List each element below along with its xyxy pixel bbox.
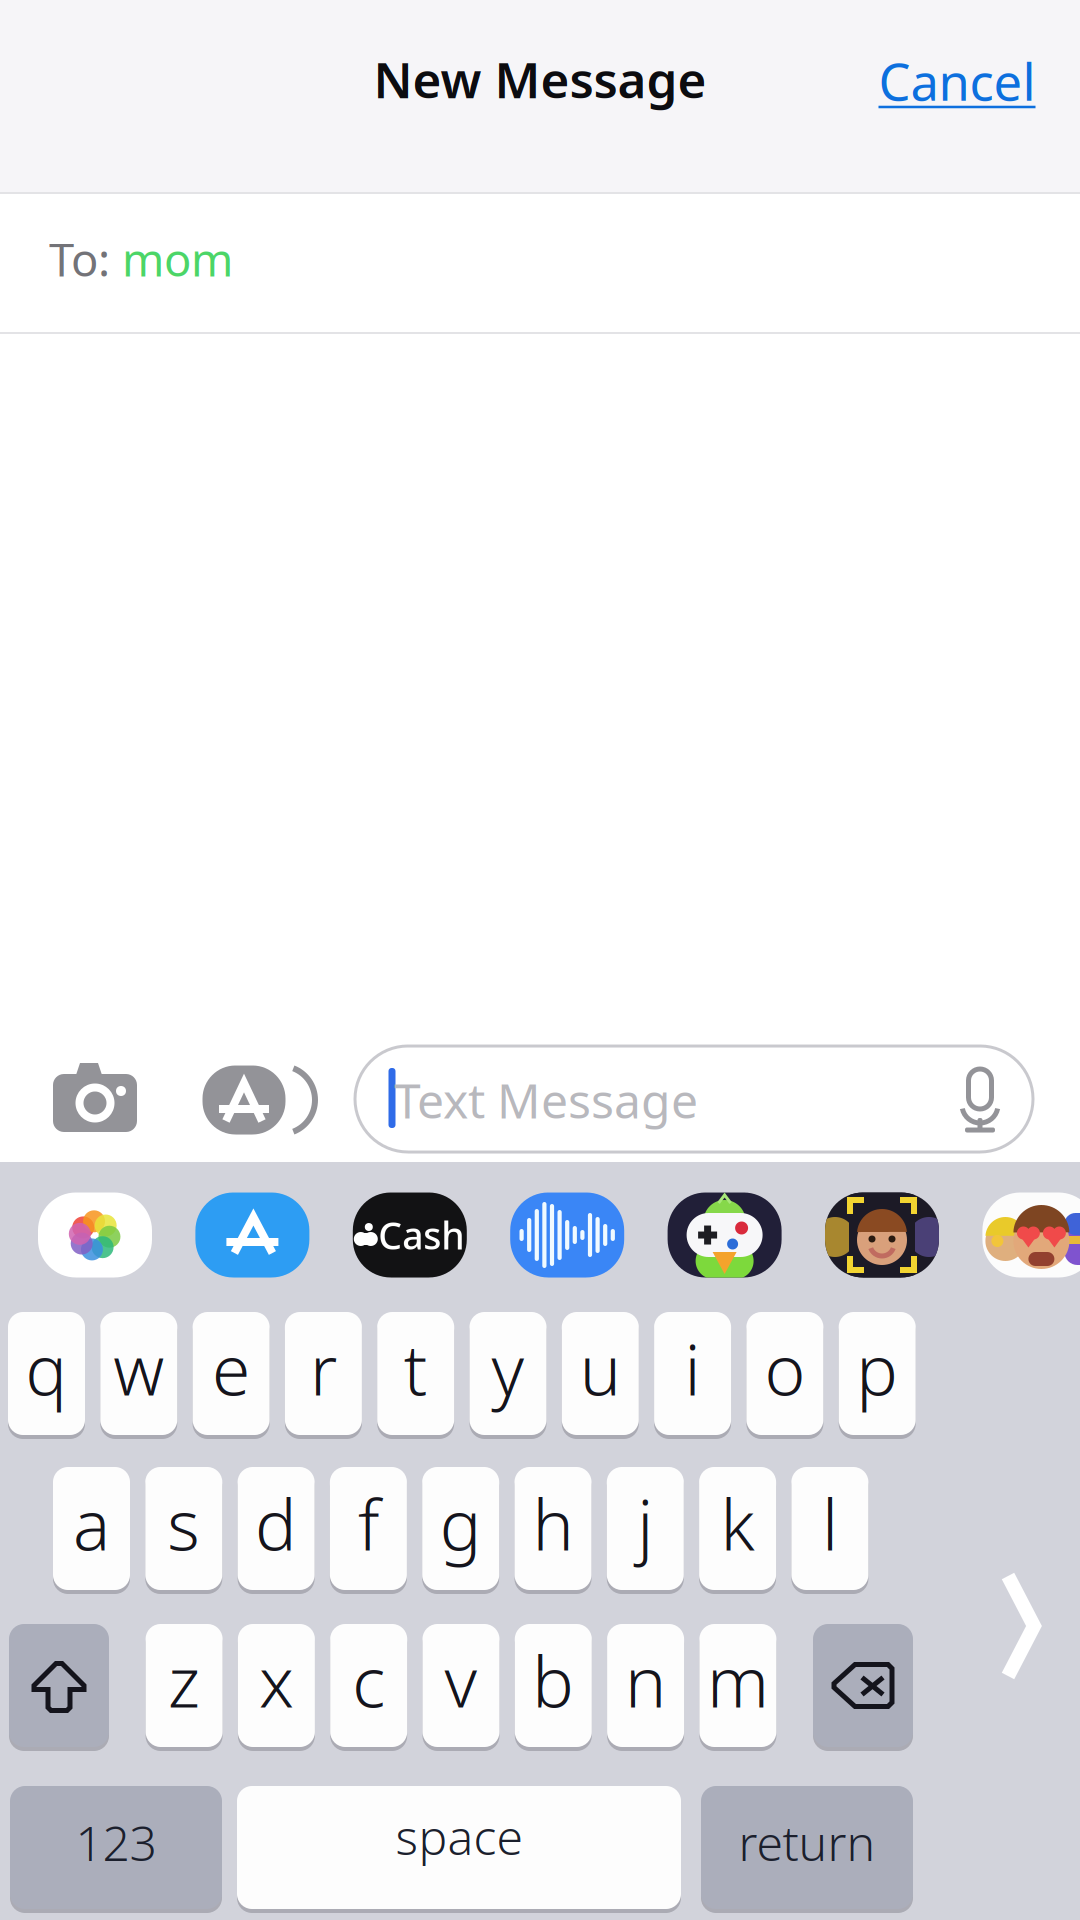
button[interactable]: g [422,1463,499,1594]
staticText: n [625,1634,666,1727]
staticText: r [310,1322,337,1415]
button[interactable]: Cancel [878,47,1035,115]
staticText: c [352,1634,385,1727]
button[interactable]: m [699,1620,776,1751]
staticText: Cash [378,1210,464,1260]
staticText: l [822,1477,838,1570]
button[interactable]: d [238,1463,315,1594]
button[interactable]: a [53,1463,130,1594]
button[interactable]: Apple Cash [353,1192,467,1277]
button[interactable]: y [469,1308,546,1439]
button[interactable]: Photos [38,1192,152,1277]
button[interactable]: q [8,1308,85,1439]
staticText: Text Message [394,1068,698,1132]
button[interactable]: Audio Message [510,1192,624,1277]
button[interactable]: To: [49,189,1080,329]
button[interactable]: j [607,1463,684,1594]
staticText: p [856,1322,898,1415]
staticText: i [685,1322,701,1415]
button[interactable]: e [193,1308,270,1439]
button[interactable]: Dictate [957,1065,1003,1135]
button[interactable]: b [515,1620,592,1751]
staticText: s [167,1477,200,1570]
staticText: w [113,1322,164,1415]
staticText: z [168,1634,200,1727]
button[interactable]: f [330,1463,407,1594]
button[interactable]: App Store [194,1058,306,1142]
button[interactable]: w [100,1308,177,1439]
button[interactable]: u [562,1308,639,1439]
staticText: u [580,1322,621,1415]
button[interactable]: Shift [9,1620,109,1751]
button[interactable]: z [146,1620,223,1751]
staticText: mom [122,229,233,289]
staticText: o [764,1322,805,1415]
staticText: New Message [373,46,706,112]
button[interactable]: Memoji camera [825,1192,939,1277]
staticText: x [259,1634,294,1727]
staticText: q [25,1322,67,1415]
button[interactable]: s [145,1463,222,1594]
button[interactable]: v [422,1620,499,1751]
staticText: 123 [75,1811,156,1874]
staticText: g [440,1477,482,1570]
button[interactable]: Camera [49,1060,141,1140]
button[interactable]: k [699,1463,776,1594]
button[interactable]: r [285,1308,362,1439]
staticText: h [532,1477,573,1570]
staticText: v [444,1634,477,1727]
staticText: t [404,1322,428,1415]
button[interactable]: h [514,1463,591,1594]
button[interactable]: t [377,1308,454,1439]
button[interactable]: o [746,1308,823,1439]
staticText: j [637,1477,653,1570]
button[interactable]: App Store [195,1192,309,1277]
staticText: d [255,1477,297,1570]
staticText: y [491,1322,524,1415]
button[interactable]: space [237,1782,681,1913]
button[interactable]: p [839,1308,916,1439]
staticText: e [212,1322,250,1415]
staticText: f [358,1477,379,1570]
staticText: a [73,1477,110,1570]
button[interactable]: i [654,1308,731,1439]
staticText: b [532,1634,574,1727]
button[interactable]: n [607,1620,684,1751]
staticText: space [395,1805,522,1868]
staticText: return [738,1811,875,1874]
button[interactable]: Game Pigeon [668,1192,782,1277]
button[interactable]: l [791,1463,868,1594]
staticText: Cancel [878,47,1035,115]
button[interactable]: 123 [10,1782,222,1913]
button[interactable]: c [330,1620,407,1751]
button[interactable]: x [238,1620,315,1751]
button[interactable]: return [701,1782,913,1913]
button[interactable]: Memoji stickers [982,1192,1080,1277]
button[interactable]: Delete [813,1620,913,1751]
staticText: To: [49,229,122,289]
staticText: k [721,1477,755,1570]
staticText: m [707,1634,769,1727]
